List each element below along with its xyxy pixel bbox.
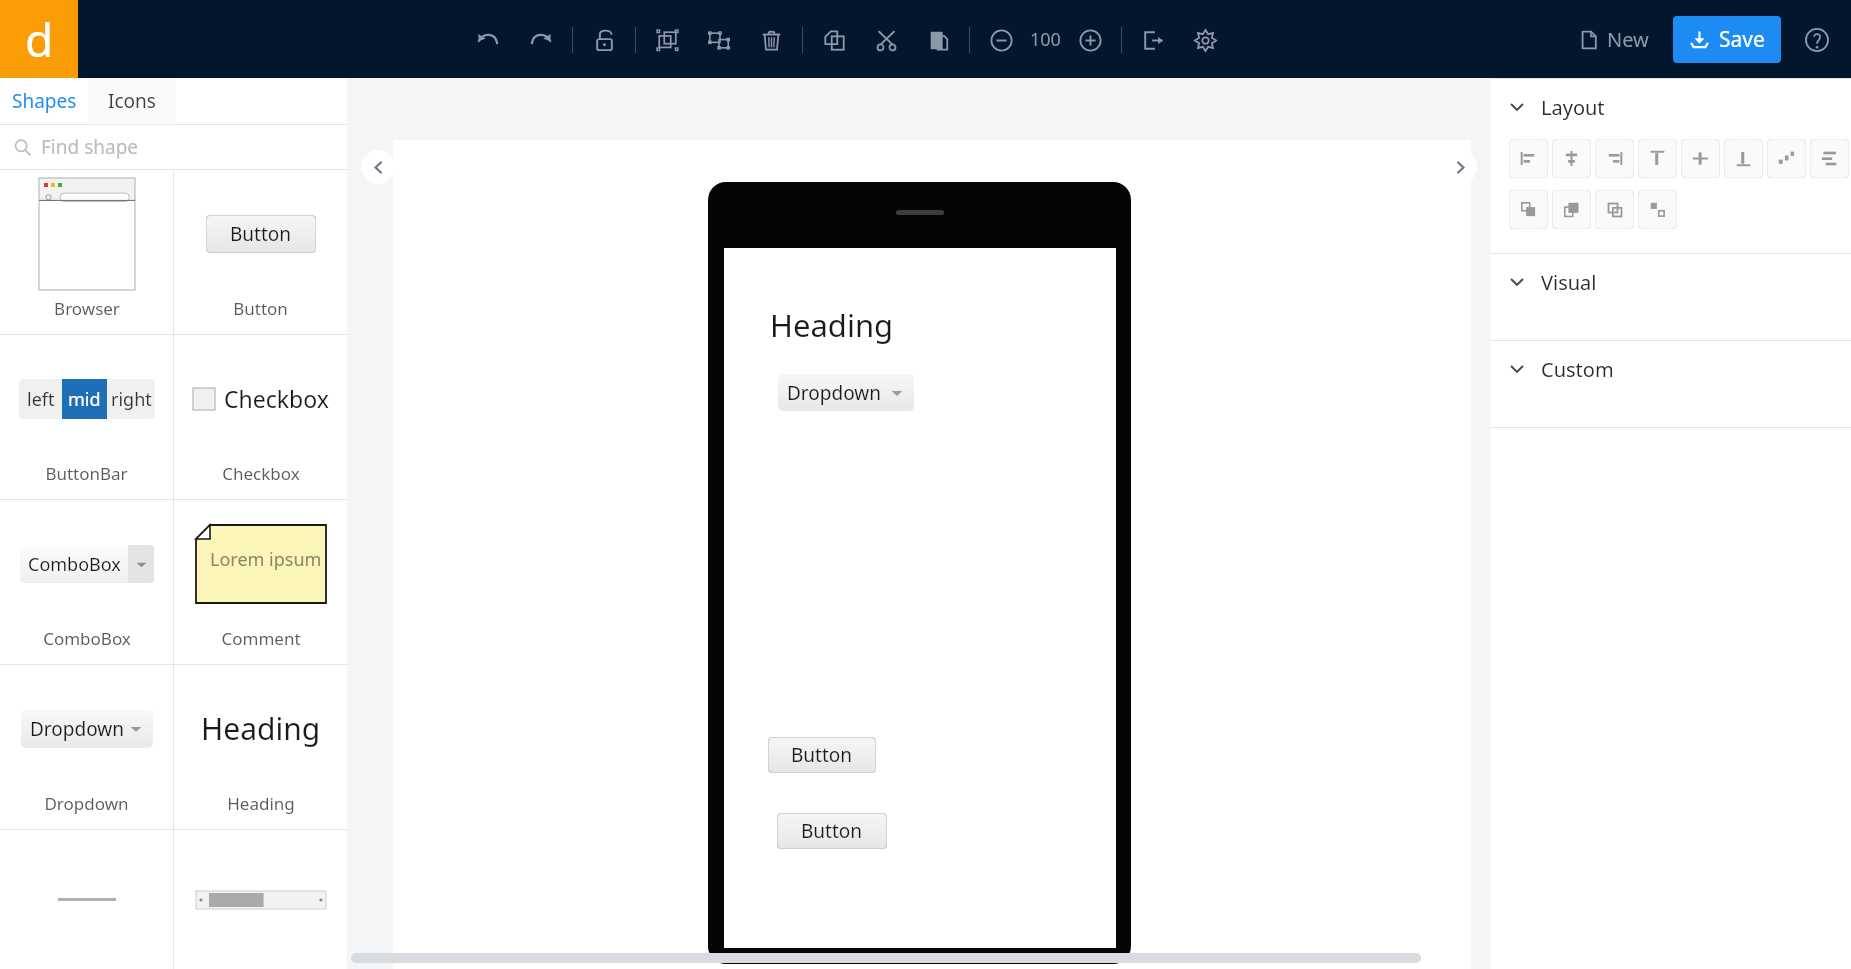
staticText: Heading [227,792,295,815]
staticText: Lorem ipsum [210,547,322,572]
button[interactable]: Dropdown [0,665,173,829]
staticText: Visual [1541,269,1597,296]
button[interactable]: Align 0 [1509,139,1548,178]
button[interactable]: Dropdown [21,710,153,748]
staticText: Layout [1541,94,1605,121]
button[interactable]: Checkbox [193,383,329,414]
staticText: Custom [1541,356,1614,383]
staticText: Button [230,221,292,247]
button[interactable]: Align 4 [1681,139,1720,178]
button[interactable] [196,891,326,909]
staticText: ButtonBar [45,462,128,485]
staticText: Button [233,297,288,320]
button[interactable]: Ungroup [702,23,736,57]
button[interactable]: Align 6 [1767,139,1806,178]
button[interactable]: Heading [201,708,321,749]
button[interactable] [174,830,347,969]
button[interactable]: ComboBox [0,500,173,664]
staticText: right [111,387,152,412]
staticText: Find shape [41,134,139,160]
staticText: Button [791,742,853,768]
button[interactable]: Group [650,23,684,57]
staticText: Heading [201,708,321,749]
button[interactable]: Settings [1188,23,1222,57]
button[interactable]: Lorem ipsum [196,525,326,603]
button[interactable]: Copy [817,23,851,57]
button[interactable]: Align 7 [1810,139,1849,178]
button[interactable]: Order 1 [1552,190,1591,229]
button[interactable]: Align 2 [1595,139,1634,178]
button[interactable]: Shapes [0,78,88,124]
button[interactable]: Align 5 [1724,139,1763,178]
button[interactable]: Undo [470,23,504,57]
staticText: Checkbox [224,383,329,414]
button[interactable]: Browser [0,170,173,334]
button[interactable]: Order 3 [1638,190,1677,229]
staticText: 100 [1030,27,1061,52]
staticText: ComboBox [43,627,131,650]
button[interactable]: Checkbox [174,335,347,499]
staticText: Shapes [12,88,77,114]
staticText: d [25,8,54,71]
button[interactable]: Collapse left panel [361,150,395,184]
button[interactable]: Icons [88,78,176,124]
button[interactable]: Lorem ipsum [174,500,347,664]
button[interactable]: Align 3 [1638,139,1677,178]
button[interactable]: Phone mockup [708,182,1131,964]
button[interactable]: Paste [921,23,955,57]
button[interactable]: Zoom out [984,23,1018,57]
button[interactable]: Cut [869,23,903,57]
button[interactable]: Order 0 [1509,190,1548,229]
staticText: mid [68,387,101,412]
button[interactable]: Zoom in [1073,23,1107,57]
staticText: Dropdown [44,792,129,815]
button[interactable]: Find shape [0,125,347,169]
button[interactable]: Collapse right panel [1443,150,1477,184]
staticText: Dropdown [787,380,881,406]
button[interactable] [0,830,173,969]
staticText: Icons [108,88,156,114]
staticText: Comment [221,627,301,650]
button[interactable]: Dropdown [778,374,914,411]
button[interactable]: Save [1673,16,1781,63]
button[interactable]: Lock [587,23,621,57]
button[interactable]: Button [768,737,876,773]
button[interactable]: Button [206,215,316,253]
button[interactable]: Order 2 [1595,190,1634,229]
staticText: Checkbox [222,462,300,485]
button[interactable]: Button [174,170,347,334]
button[interactable]: Align 1 [1552,139,1591,178]
button[interactable]: Custom [1491,341,1851,397]
staticText: Button [801,818,863,844]
staticText: left [27,387,55,412]
button[interactable]: New [1569,18,1659,61]
button[interactable]: left [19,379,155,419]
staticText: Save [1719,25,1765,54]
staticText: ComboBox [28,552,121,577]
staticText: Browser [54,297,120,320]
button[interactable]: Heading [174,665,347,829]
staticText: New [1607,26,1649,53]
button[interactable]: Layout [1491,79,1851,135]
button[interactable]: Delete [754,23,788,57]
button[interactable]: Redo [524,23,558,57]
button[interactable]: 100 [1024,21,1067,58]
button[interactable]: ComboBox [20,545,154,583]
button[interactable]: Button [777,813,887,849]
button[interactable]: Visual [1491,254,1851,310]
staticText: Dropdown [30,716,124,742]
button[interactable]: left [0,335,173,499]
button[interactable]: Export [1136,23,1170,57]
button[interactable]: Help [1797,20,1837,60]
button[interactable]: App logo [0,0,78,78]
staticText: Heading [770,304,894,346]
